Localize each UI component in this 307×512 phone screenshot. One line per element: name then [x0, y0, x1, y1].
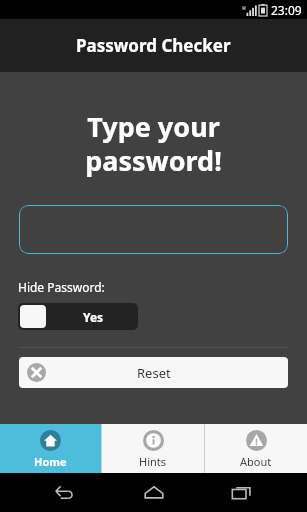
staticText: Hints	[139, 454, 167, 469]
button[interactable]: Hints	[102, 424, 204, 473]
button[interactable]: About	[205, 424, 307, 473]
staticText: Home	[34, 454, 67, 469]
button[interactable]: Home	[130, 473, 178, 512]
staticText: 23:09	[271, 2, 302, 18]
staticText: Password Checker	[76, 34, 231, 57]
button[interactable]: Back	[41, 473, 89, 512]
staticText: Type your password!	[0, 108, 307, 179]
button[interactable]: Recents	[218, 473, 266, 512]
staticText: Hide Password:	[18, 279, 105, 295]
button[interactable]: Yes	[18, 303, 138, 330]
staticText: Yes	[83, 309, 104, 325]
button[interactable]: Home	[0, 424, 101, 473]
staticText: Reset	[137, 364, 171, 382]
button[interactable]	[19, 205, 288, 254]
button[interactable]: Reset	[19, 357, 288, 388]
staticText: About	[240, 454, 272, 469]
